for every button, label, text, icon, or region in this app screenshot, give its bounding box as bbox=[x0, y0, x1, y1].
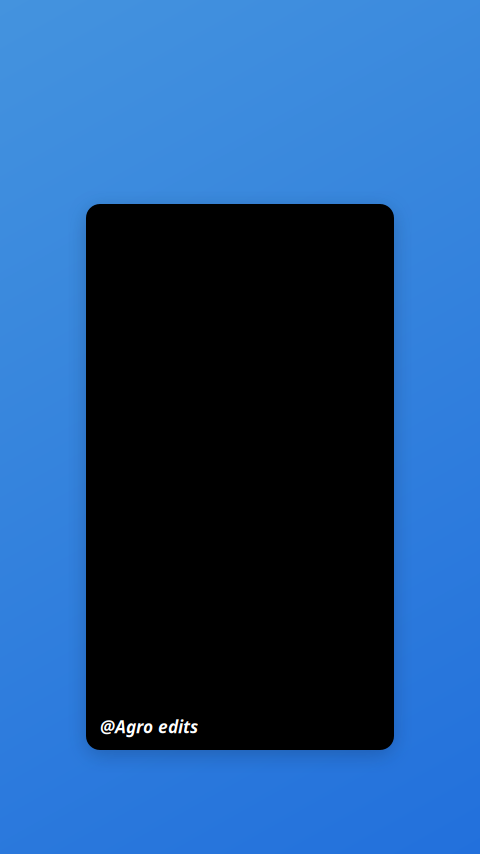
staticText: @Agro edits bbox=[100, 715, 198, 738]
button[interactable]: @Agro edits bbox=[86, 204, 394, 750]
